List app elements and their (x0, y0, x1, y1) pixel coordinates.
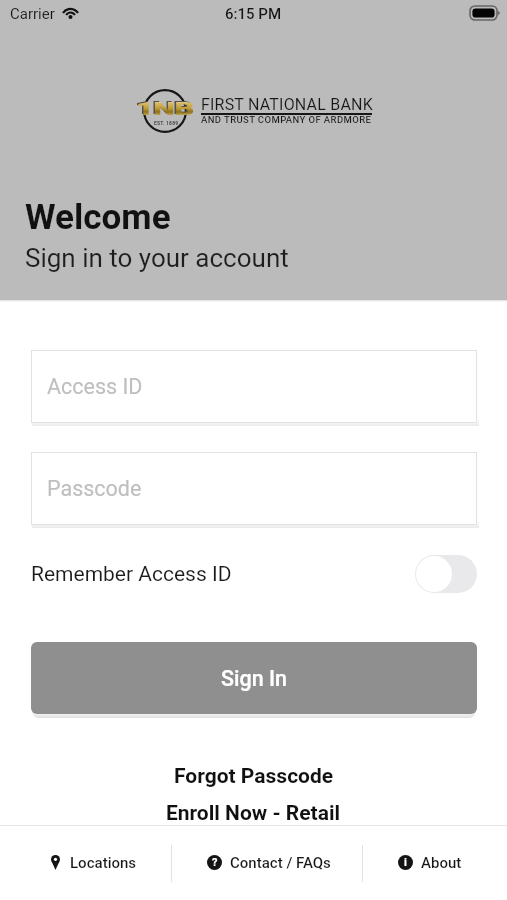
staticText: Locations (70, 854, 137, 872)
staticText: i (404, 856, 407, 869)
staticText: 1NB (136, 97, 194, 119)
staticText: Remember Access ID (31, 562, 232, 587)
staticText: Carrier (10, 5, 55, 23)
button[interactable]: Passcode (31, 452, 477, 525)
button[interactable]: Remember Access ID (31, 549, 477, 599)
staticText: 6:15 PM (225, 5, 282, 23)
staticText: 1NB (134, 96, 193, 118)
button[interactable]: ? (173, 825, 364, 900)
button[interactable]: Forgot Passcode (0, 761, 507, 791)
button[interactable]: Sign In (31, 642, 477, 714)
staticText: EST. 1889 (154, 120, 179, 126)
staticText: Contact / FAQs (230, 854, 331, 872)
button[interactable]: Locations (8, 825, 179, 900)
staticText: ? (212, 856, 218, 869)
button[interactable]: Enroll Now - Retail (0, 798, 507, 828)
button[interactable]: Access ID (31, 350, 477, 423)
staticText: Sign In (221, 666, 288, 691)
staticText: FIRST NATIONAL BANK (201, 95, 373, 114)
staticText: Sign in to your account (25, 243, 289, 273)
button[interactable]: Remember Access ID toggle (415, 555, 477, 593)
staticText: AND TRUST COMPANY OF ARDMORE (201, 114, 372, 125)
staticText: Access ID (47, 374, 143, 399)
staticText: Enroll Now - Retail (166, 801, 341, 826)
staticText: Forgot Passcode (174, 764, 334, 789)
staticText: Welcome (25, 197, 171, 238)
staticText: About (421, 854, 462, 872)
button[interactable]: i (357, 825, 502, 900)
staticText: Passcode (47, 476, 142, 501)
